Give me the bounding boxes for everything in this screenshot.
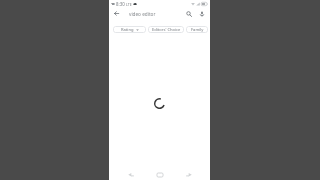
button[interactable]: Home (154, 169, 165, 180)
button[interactable]: Navigate up (111, 8, 122, 19)
button[interactable]: Editors' Choice (148, 26, 184, 33)
staticText: Editors' Choice (152, 27, 181, 33)
button[interactable]: Search (183, 8, 194, 19)
staticText: video editor (129, 11, 156, 17)
staticText: Family (191, 27, 204, 33)
button[interactable]: Recent apps (183, 169, 194, 180)
button[interactable]: Rating (113, 26, 146, 33)
staticText: Rating (121, 27, 134, 33)
button[interactable]: Back (125, 169, 136, 180)
button[interactable]: Family (186, 26, 208, 33)
staticText: LTE (126, 2, 132, 7)
button[interactable]: Voice search (196, 8, 207, 19)
staticText: 8:30 (116, 1, 125, 7)
